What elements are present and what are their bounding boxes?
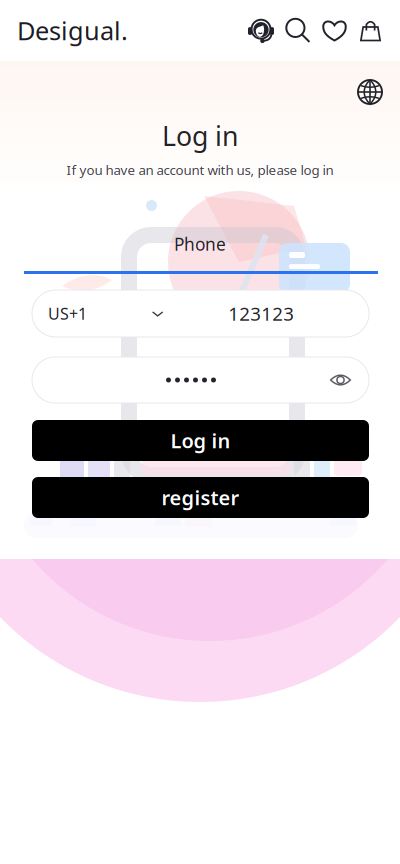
staticText: Desigual.: [17, 14, 128, 47]
button[interactable]: Wishlist: [322, 18, 347, 43]
button[interactable]: Shopping bag: [358, 18, 383, 43]
button[interactable]: Phone: [150, 231, 250, 257]
staticText: Phone: [174, 232, 226, 255]
staticText: Log in: [162, 118, 238, 153]
button[interactable]: Log in: [32, 420, 369, 461]
staticText: 123123: [228, 301, 294, 326]
button[interactable]: Search: [285, 17, 311, 43]
staticText: register: [161, 484, 239, 511]
button[interactable]: Customer service: [248, 17, 274, 43]
button[interactable]: register: [32, 477, 369, 518]
staticText: Log in: [170, 427, 230, 454]
button[interactable]: Desigual.: [17, 14, 128, 47]
staticText: US+1: [48, 303, 87, 324]
button[interactable]: Language: [357, 79, 383, 105]
staticText: If you have an account with us, please l…: [66, 161, 333, 179]
